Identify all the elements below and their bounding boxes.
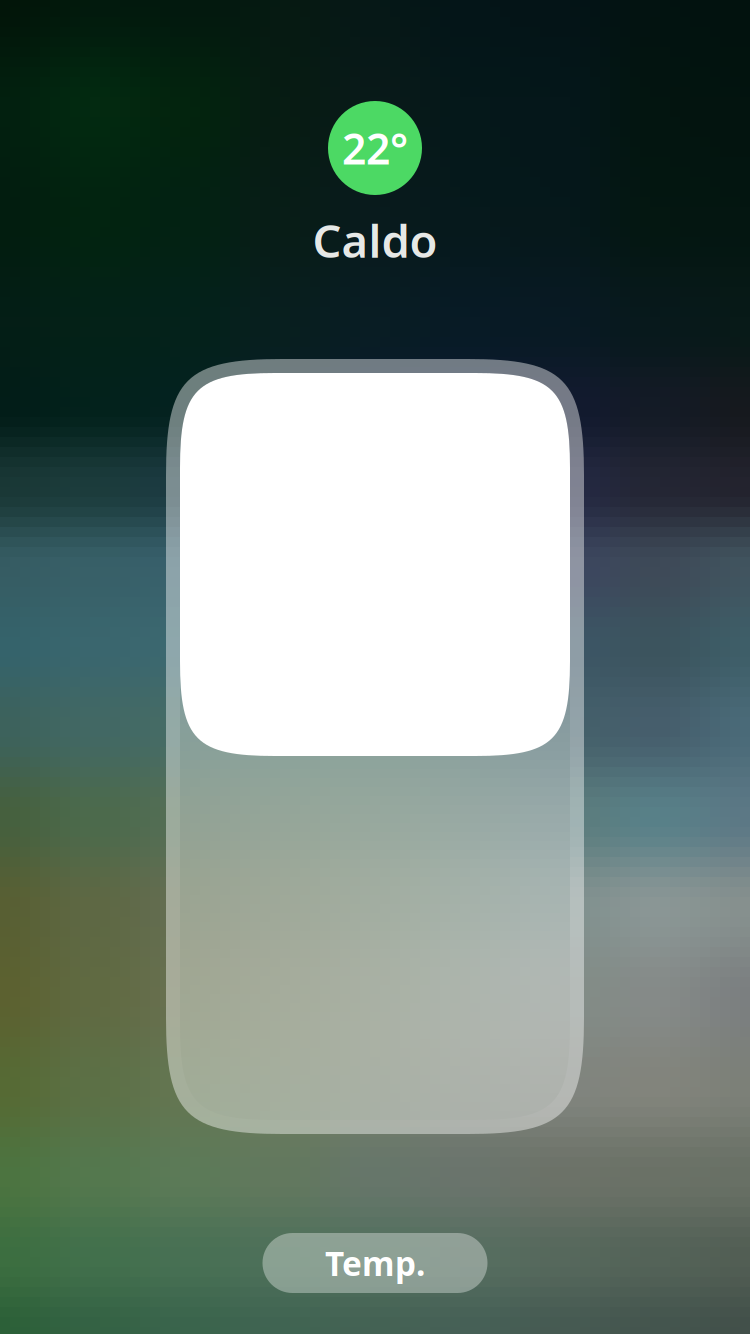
staticText: Caldo xyxy=(312,210,437,270)
staticText: Temp. xyxy=(325,1241,425,1285)
button[interactable]: Temp. xyxy=(262,1233,487,1293)
staticText: 22° xyxy=(342,120,408,176)
button[interactable] xyxy=(166,359,584,1134)
